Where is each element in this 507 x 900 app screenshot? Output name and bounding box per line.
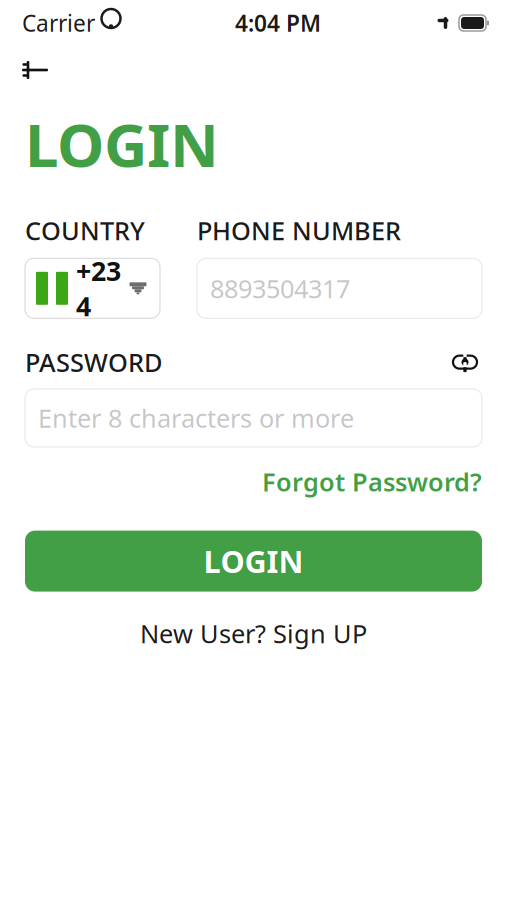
button[interactable]: Show password <box>448 349 482 375</box>
staticText: New User? Sign UP <box>140 617 367 650</box>
button[interactable]: Password <box>25 389 482 447</box>
staticText: Forgot Password? <box>262 465 482 499</box>
button[interactable]: New User? Sign UP <box>140 617 367 650</box>
staticText: PASSWORD <box>25 345 163 379</box>
staticText: Enter 8 characters or more <box>38 401 354 435</box>
button[interactable]: Forgot Password? <box>262 465 482 499</box>
staticText: 4:04 PM <box>235 8 321 38</box>
staticText: COUNTRY <box>25 214 145 247</box>
staticText: +234 <box>76 253 121 324</box>
button[interactable]: Select country code, Nigeria +234 <box>25 258 160 318</box>
staticText: PHONE NUMBER <box>197 214 401 247</box>
button[interactable]: Back <box>13 50 57 90</box>
button[interactable]: LOGIN <box>25 531 482 592</box>
staticText: LOGIN <box>25 104 219 184</box>
staticText: Carrier <box>22 8 95 38</box>
button[interactable]: Phone number <box>197 258 482 318</box>
staticText: LOGIN <box>203 541 303 581</box>
staticText: 8893504317 <box>210 271 350 305</box>
